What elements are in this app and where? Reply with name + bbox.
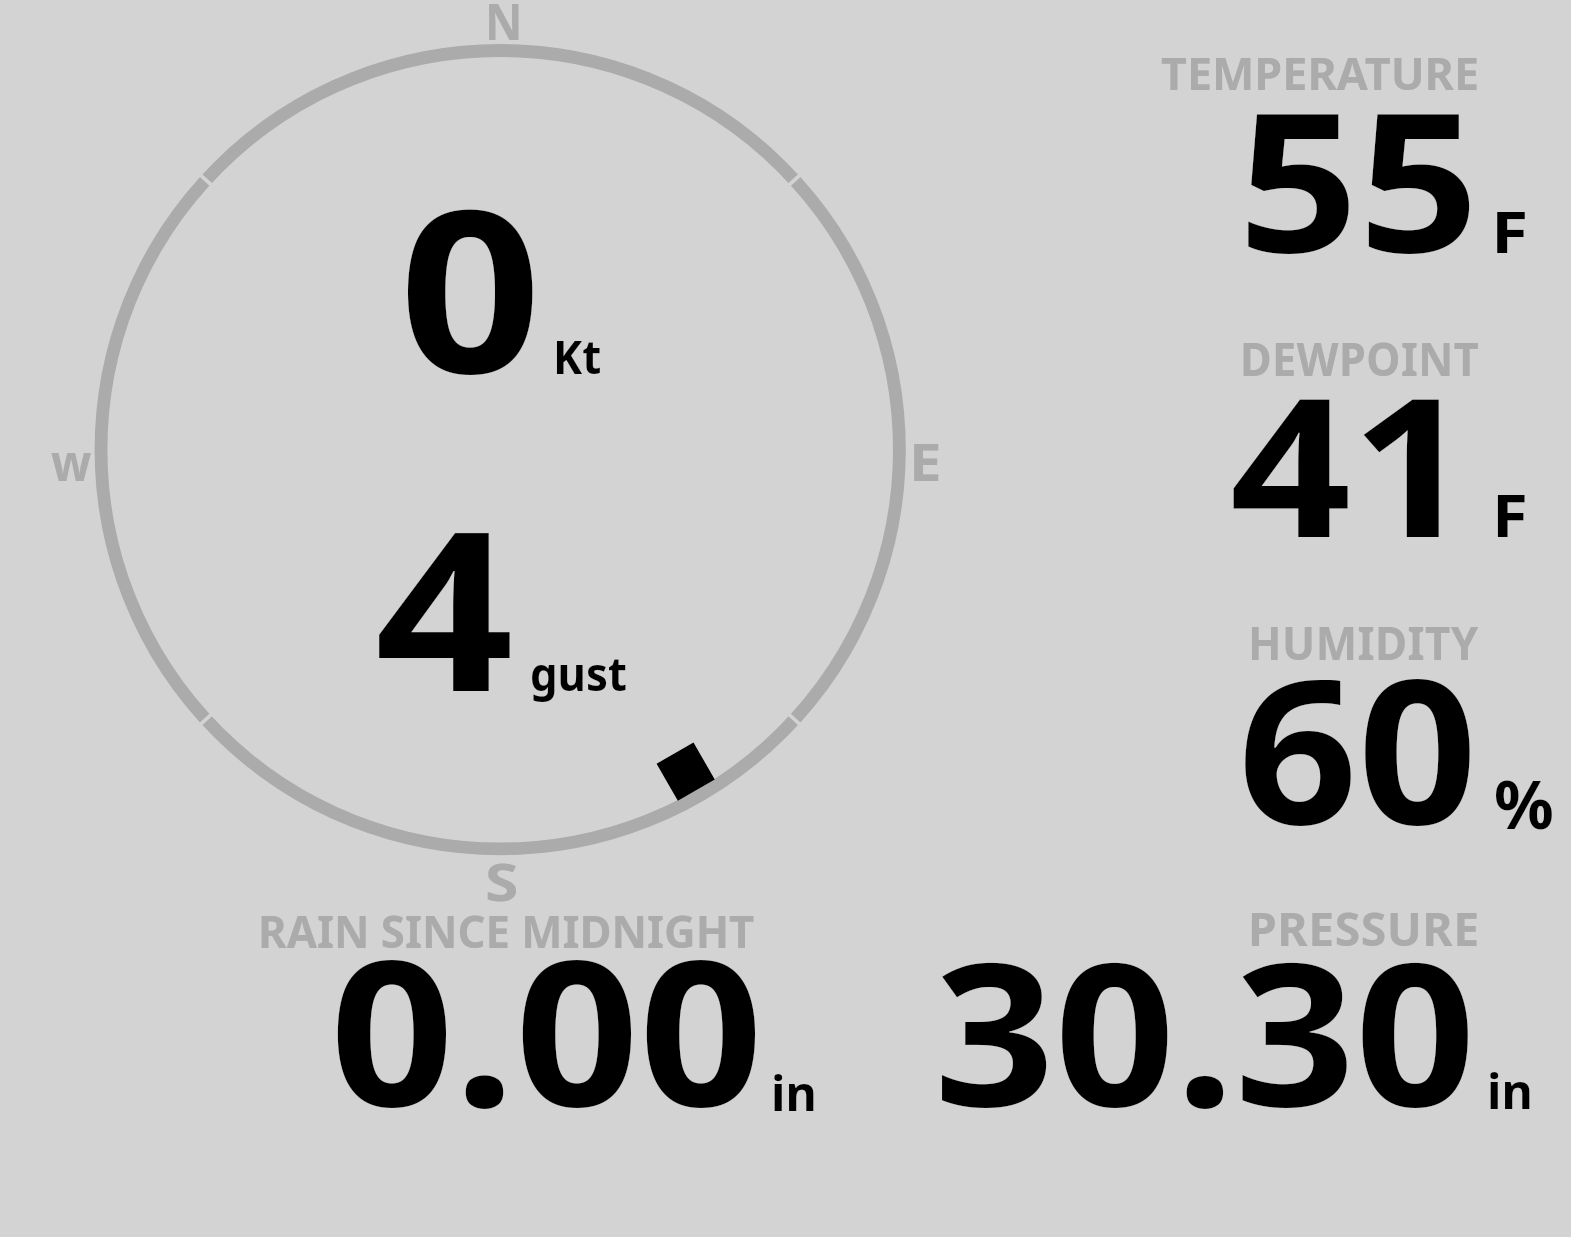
- staticText: N: [485, 0, 523, 55]
- button[interactable]: Wind 0 knots, gusting 4, from the south-…: [60, 10, 950, 900]
- staticText: RAIN SINCE MIDNIGHT: [258, 901, 754, 961]
- button[interactable]: Rain since midnight 0.00 inches: [230, 900, 830, 1125]
- staticText: F: [1492, 473, 1528, 555]
- staticText: TEMPERATURE: [1161, 42, 1480, 103]
- staticText: 41: [1230, 332, 1473, 594]
- staticText: HUMIDITY: [1248, 610, 1479, 673]
- staticText: 30.30: [934, 895, 1476, 1163]
- staticText: Kt: [553, 325, 602, 388]
- button[interactable]: Pressure 30.30 inches: [900, 895, 1560, 1125]
- staticText: gust: [530, 641, 628, 705]
- staticText: w: [51, 426, 92, 496]
- staticText: DEWPOINT: [1240, 327, 1479, 390]
- staticText: 60: [1238, 611, 1478, 882]
- staticText: %: [1494, 758, 1554, 848]
- staticText: 4: [375, 455, 514, 756]
- button[interactable]: Dew point 41 degrees Fahrenheit: [1100, 325, 1560, 590]
- staticText: in: [771, 1059, 817, 1125]
- staticText: E: [909, 426, 942, 496]
- button[interactable]: Humidity 60 percent: [1100, 610, 1560, 880]
- button[interactable]: Temperature 55 degrees Fahrenheit: [1100, 40, 1560, 310]
- staticText: S: [485, 845, 519, 916]
- staticText: in: [1487, 1057, 1533, 1123]
- staticText: F: [1491, 192, 1529, 270]
- staticText: 0: [399, 133, 542, 439]
- staticText: PRESSURE: [1248, 897, 1480, 960]
- staticText: 55: [1238, 47, 1480, 308]
- staticText: 0.00: [330, 891, 764, 1165]
